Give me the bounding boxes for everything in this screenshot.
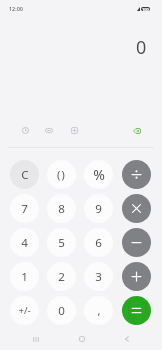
staticText: +/- <box>18 304 31 317</box>
button[interactable]: 4 <box>10 228 39 257</box>
button[interactable]: C <box>10 160 39 189</box>
staticText: 3 <box>95 269 102 285</box>
button[interactable]: History <box>17 122 33 138</box>
staticText: 100 <box>142 7 149 11</box>
button[interactable]: Home <box>61 328 102 350</box>
staticText: 12:00 <box>9 5 23 12</box>
button[interactable]: 1 <box>10 262 39 291</box>
staticText: 5 <box>58 235 65 251</box>
staticText: 1 <box>21 269 28 285</box>
button[interactable]: Minus <box>122 228 151 257</box>
button[interactable]: +/- <box>10 296 39 325</box>
button[interactable]: 8 <box>47 194 76 223</box>
other: Minus <box>131 237 142 248</box>
button[interactable]: 9 <box>84 194 113 223</box>
button[interactable]: % <box>84 160 113 189</box>
button[interactable]: Backspace <box>129 123 145 139</box>
staticText: 9 <box>95 201 102 217</box>
staticText: , <box>97 303 101 319</box>
staticText: 8 <box>58 201 65 217</box>
button[interactable]: 2 <box>47 262 76 291</box>
button[interactable]: Plus <box>122 262 151 291</box>
staticText: C <box>21 167 29 183</box>
staticText: 7 <box>21 201 28 217</box>
other: Plus <box>131 271 142 282</box>
button[interactable]: Keypad <box>41 122 57 138</box>
staticText: 4 <box>21 235 28 251</box>
button[interactable]: Recents <box>15 328 56 350</box>
button[interactable]: , <box>84 296 113 325</box>
button[interactable]: Equals <box>122 296 151 325</box>
staticText: () <box>57 167 66 182</box>
staticText: 0 <box>136 35 147 60</box>
other: Equals <box>131 305 142 316</box>
button[interactable]: 7 <box>10 194 39 223</box>
staticText: 0 <box>58 303 65 319</box>
button[interactable]: 0 <box>47 296 76 325</box>
staticText: 2 <box>58 269 65 285</box>
button[interactable]: Multiply <box>122 194 151 223</box>
other: Divide <box>131 169 142 180</box>
button[interactable]: 3 <box>84 262 113 291</box>
button[interactable]: Divide <box>122 160 151 189</box>
other: Multiply <box>131 203 142 214</box>
button[interactable]: Back <box>106 328 147 350</box>
button[interactable]: Unit converter <box>66 122 82 138</box>
staticText: 6 <box>95 235 102 251</box>
button[interactable]: () <box>47 160 76 189</box>
button[interactable]: 6 <box>84 228 113 257</box>
staticText: % <box>93 165 105 184</box>
button[interactable]: 5 <box>47 228 76 257</box>
